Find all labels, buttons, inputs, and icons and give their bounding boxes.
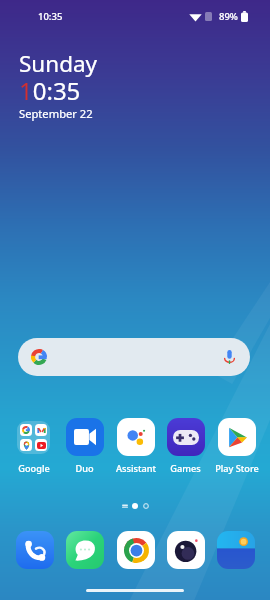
button[interactable]: Google bbox=[9, 418, 58, 475]
button[interactable]: Assistant bbox=[111, 418, 160, 475]
button[interactable]: Messages bbox=[60, 531, 109, 569]
staticText: Play Store bbox=[215, 462, 259, 475]
other: Google search bbox=[31, 349, 47, 365]
button[interactable]: Google search bbox=[18, 338, 250, 376]
staticText: 10:35 bbox=[38, 10, 63, 23]
staticText: Assistant bbox=[116, 462, 156, 475]
button[interactable]: Phone bbox=[10, 531, 59, 569]
button[interactable]: Chrome bbox=[111, 531, 160, 569]
staticText: Duo bbox=[75, 462, 94, 475]
button[interactable]: Games bbox=[161, 418, 210, 475]
button[interactable]: Play Store bbox=[212, 418, 261, 475]
staticText: 10:35 bbox=[19, 74, 81, 107]
staticText: Sunday bbox=[19, 48, 98, 79]
button[interactable]: Gallery bbox=[211, 531, 260, 569]
other: Voice search bbox=[224, 350, 235, 364]
staticText: Google bbox=[18, 462, 50, 475]
button[interactable]: Duo bbox=[60, 418, 109, 475]
button[interactable]: Camera bbox=[161, 531, 210, 569]
staticText: 89% bbox=[219, 10, 238, 23]
staticText: Games bbox=[170, 462, 201, 475]
staticText: September 22 bbox=[19, 106, 93, 121]
